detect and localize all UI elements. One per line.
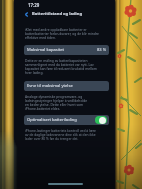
button[interactable]: Maksimal kapasitet: [24, 45, 109, 55]
staticText: en bedre ytelse. Dette eller hvert som: [25, 102, 84, 106]
staticText: Maksimal kapasitet: [27, 47, 65, 53]
staticText: Analoge dynamiske programvare- og: [25, 94, 83, 98]
staticText: av de daglige ladevanene dine slik at de…: [25, 132, 96, 136]
staticText: effektive med tiden.: [25, 35, 56, 39]
staticText: hver lading.: [25, 70, 44, 74]
button[interactable]: Optimalisert batterilading: [95, 116, 107, 124]
staticText: iKlet med andre oppladbare batterier er: [25, 27, 87, 31]
staticText: Dette er en måling av batterikapasiteten: [25, 58, 88, 62]
staticText: sammenlignet med da batteriet var nytt. …: [25, 62, 94, 66]
staticText: batteribatterier forbruksvarer, og de bl…: [25, 31, 99, 35]
staticText: kapasitet kan føre til redusert brukstid…: [25, 66, 97, 70]
button[interactable]: Optimalisert batterilading: [24, 115, 109, 125]
staticText: iPhone-lastinger batteriets kontroll ved…: [25, 128, 96, 132]
button[interactable]: Tilbake: [21, 9, 31, 19]
staticText: 83 %: [97, 47, 107, 53]
staticText: lader over 80 % før du trenger det.: [25, 136, 79, 140]
staticText: iPhone-batteriet eldes.: [25, 106, 61, 110]
staticText: Optimalisert batterilading: [27, 117, 77, 123]
button[interactable]: Evne til maksimal ytelse: [24, 81, 109, 91]
staticText: ladningsstyringer hjelper å vedlikeholde: [25, 98, 88, 102]
staticText: Batteritilstand og lading: [32, 11, 82, 17]
staticText: 17:29: [28, 2, 40, 8]
staticText: Evne til maksimal ytelse: [27, 83, 73, 89]
